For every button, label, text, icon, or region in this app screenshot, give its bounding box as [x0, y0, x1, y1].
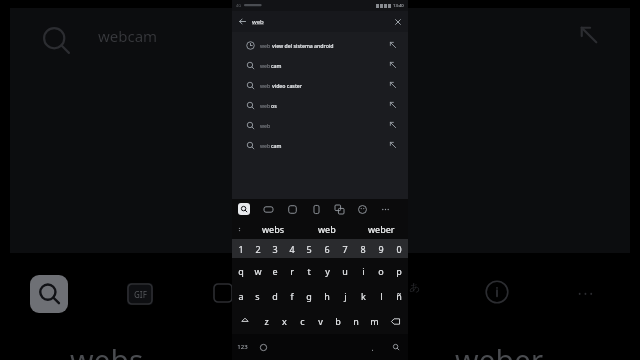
staticText: weber [455, 340, 544, 360]
button[interactable]: web [300, 219, 354, 239]
button[interactable]: Search [238, 203, 250, 215]
button[interactable]: e [266, 258, 283, 283]
button[interactable]: n [347, 308, 365, 334]
staticText: 1 [238, 243, 244, 255]
button[interactable]: web [240, 35, 404, 55]
staticText: 9 [378, 243, 384, 255]
button[interactable]: Insert suggestion [382, 135, 404, 155]
button[interactable]: q [232, 258, 249, 283]
button[interactable]: t [300, 258, 318, 283]
button[interactable]: Clear [388, 11, 408, 32]
button[interactable]: s [249, 283, 266, 308]
button[interactable]: web [240, 55, 404, 75]
button[interactable]: 123 [232, 334, 253, 360]
button[interactable]: ñ [390, 283, 408, 308]
button[interactable]: Insert suggestion [382, 95, 404, 115]
staticText: l [380, 290, 383, 302]
button[interactable]: a [232, 283, 249, 308]
button[interactable]: sticker [286, 203, 298, 215]
button[interactable]: 6 [318, 239, 336, 258]
button[interactable]: k [354, 283, 372, 308]
button[interactable]: b [329, 308, 347, 334]
button[interactable]: more [379, 203, 391, 215]
button[interactable]: 3 [266, 239, 283, 258]
staticText: s [255, 290, 260, 302]
staticText: GIF [134, 289, 147, 300]
button[interactable]: Search [383, 334, 408, 360]
button[interactable]: i [354, 258, 372, 283]
staticText: d [272, 290, 278, 302]
button[interactable]: f [283, 283, 300, 308]
button[interactable]: z [257, 308, 275, 334]
staticText: web [260, 62, 271, 69]
staticText: web [260, 142, 271, 149]
staticText: y [325, 265, 330, 277]
button[interactable]: v [311, 308, 329, 334]
button[interactable]: Emoji [253, 334, 274, 360]
staticText: web [260, 102, 271, 109]
button[interactable]: Insert suggestion [382, 115, 404, 135]
staticText: 4G [236, 3, 242, 8]
button[interactable]: web [240, 75, 404, 95]
button[interactable]: c [293, 308, 311, 334]
button[interactable]: 4 [283, 239, 300, 258]
button[interactable]: Insert suggestion [382, 75, 404, 95]
staticText: web [252, 18, 264, 26]
staticText: t [307, 265, 311, 277]
staticText: . [371, 342, 374, 353]
button[interactable]: 0 [390, 239, 408, 258]
button[interactable]: Shift [232, 308, 257, 334]
button[interactable]: web [240, 115, 404, 135]
staticText: o [378, 265, 384, 277]
staticText: あ [409, 280, 421, 294]
button[interactable]: y [318, 258, 336, 283]
button[interactable]: w [249, 258, 266, 283]
button[interactable]: r [283, 258, 300, 283]
button[interactable]: weber [354, 219, 408, 239]
button[interactable]: clip [310, 203, 322, 215]
button[interactable]: 5 [300, 239, 318, 258]
button[interactable]: GIF [262, 203, 274, 215]
button[interactable]: 2 [249, 239, 266, 258]
button[interactable]: l [372, 283, 390, 308]
button[interactable]: j [336, 283, 354, 308]
staticText: b [335, 315, 341, 327]
staticText: web [260, 82, 272, 89]
button[interactable]: u [336, 258, 354, 283]
staticText: 3 [272, 243, 278, 255]
button[interactable]: 7 [336, 239, 354, 258]
button[interactable]: web [240, 135, 404, 155]
button[interactable]: Insert suggestion [382, 35, 404, 55]
button[interactable]: . [362, 334, 383, 360]
button[interactable]: g [300, 283, 318, 308]
button[interactable]: Backspace [383, 308, 408, 334]
button[interactable]: translate [333, 203, 345, 215]
staticText: web [318, 223, 336, 235]
button[interactable]: Back [232, 11, 252, 32]
button[interactable]: 9 [372, 239, 390, 258]
staticText: os [271, 102, 277, 109]
button[interactable]: 1 [232, 239, 249, 258]
button[interactable]: d [266, 283, 283, 308]
button[interactable]: emoji [356, 203, 368, 215]
button[interactable]: x [275, 308, 293, 334]
button[interactable]: Insert suggestion [382, 55, 404, 75]
staticText: k [361, 290, 366, 302]
staticText: 2 [255, 243, 261, 255]
staticText: p [396, 265, 402, 277]
button[interactable]: p [390, 258, 408, 283]
staticText: 123 [237, 343, 248, 351]
staticText: n [353, 315, 359, 327]
staticText: cam [271, 62, 282, 69]
button[interactable]: h [318, 283, 336, 308]
button[interactable]: o [372, 258, 390, 283]
staticText: j [344, 290, 347, 302]
button[interactable]: web [240, 95, 404, 115]
staticText: 7 [342, 243, 348, 255]
button[interactable]: 8 [354, 239, 372, 258]
button[interactable]: webs [246, 219, 300, 239]
staticText: w [254, 265, 262, 277]
button[interactable]: m [365, 308, 383, 334]
button[interactable]: web [252, 11, 388, 32]
